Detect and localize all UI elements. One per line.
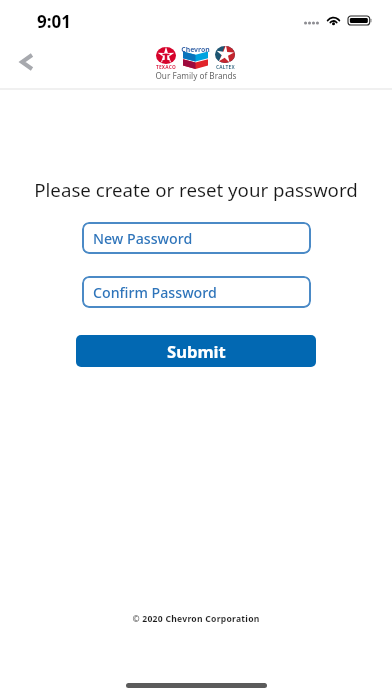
button[interactable]: New Password — [82, 222, 311, 254]
button[interactable]: Back — [9, 44, 45, 80]
button[interactable]: Confirm Password — [82, 276, 311, 308]
staticText: New Password — [93, 229, 193, 248]
staticText: 9:01 — [37, 10, 71, 33]
staticText: Our Family of Brands — [155, 70, 237, 81]
staticText: © 2020 Chevron Corporation — [0, 613, 392, 625]
staticText: Chevron — [181, 45, 210, 54]
staticText: Submit — [167, 340, 226, 363]
staticText: CALTEX — [216, 64, 235, 71]
staticText: TEXACO — [156, 64, 176, 71]
staticText: Confirm Password — [93, 283, 217, 302]
button[interactable]: Submit — [76, 335, 316, 367]
staticText: Please create or reset your password — [0, 177, 392, 202]
